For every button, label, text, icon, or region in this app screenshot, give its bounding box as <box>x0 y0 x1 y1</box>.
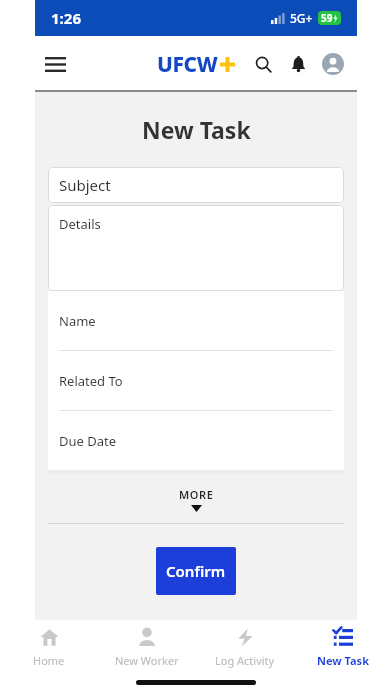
staticText: 59 <box>321 11 333 25</box>
button[interactable]: Related To <box>48 351 344 411</box>
staticText: Details <box>59 215 101 233</box>
button[interactable]: Home <box>0 625 98 668</box>
staticText: 5G+ <box>290 10 313 26</box>
button[interactable]: Profile <box>318 49 348 79</box>
button[interactable]: New Worker <box>98 625 196 668</box>
button[interactable]: MORE <box>35 487 357 512</box>
button[interactable]: Log Activity <box>196 625 294 668</box>
staticText: 1:26 <box>51 8 81 28</box>
staticText: Confirm <box>166 561 226 581</box>
staticText: MORE <box>179 487 214 502</box>
staticText: UFCW <box>157 50 218 79</box>
staticText: New Worker <box>115 653 179 668</box>
button[interactable]: Subject <box>48 167 344 203</box>
staticText: Log Activity <box>215 653 275 668</box>
staticText: Name <box>59 312 96 330</box>
button[interactable]: Notifications <box>283 49 313 79</box>
button[interactable]: Confirm <box>156 547 236 595</box>
staticText: Due Date <box>59 432 117 450</box>
staticText: Home <box>33 653 65 668</box>
staticText: Subject <box>59 175 111 195</box>
button[interactable]: Details <box>48 205 344 291</box>
button[interactable]: Due Date <box>48 411 344 470</box>
button[interactable]: Name <box>48 291 344 351</box>
button[interactable]: New Task <box>294 625 392 668</box>
button[interactable]: Search <box>248 49 278 79</box>
staticText: Related To <box>59 372 123 390</box>
staticText: New Task <box>317 653 369 668</box>
staticText: New Task <box>142 114 251 145</box>
button[interactable]: Menu <box>38 47 72 81</box>
